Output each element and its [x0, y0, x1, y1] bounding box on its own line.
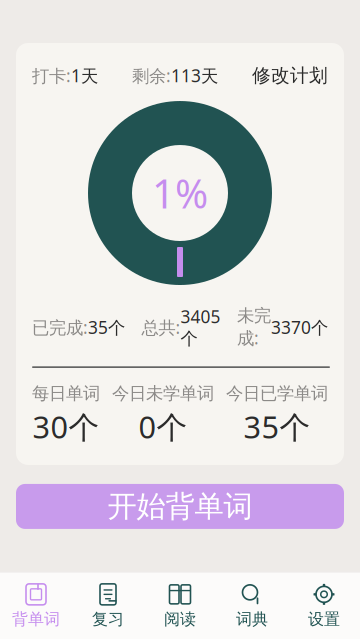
button[interactable]: 设置	[288, 576, 360, 635]
staticText: 背单词	[12, 609, 60, 629]
staticText: 35个	[88, 316, 125, 339]
staticText: 打卡:	[32, 64, 71, 87]
button[interactable]: 修改计划	[252, 64, 328, 87]
staticText: 0个	[138, 406, 187, 447]
staticText: 开始背单词	[107, 488, 252, 524]
staticText: 每日单词	[32, 383, 100, 404]
staticText: 3370个	[271, 316, 328, 339]
staticText: 词典	[236, 609, 268, 629]
button[interactable]: 开始背单词	[16, 484, 344, 529]
staticText: 阅读	[164, 609, 196, 629]
staticText: 113天	[171, 64, 218, 87]
staticText: 设置	[308, 609, 340, 629]
staticText: 已完成:	[32, 316, 88, 339]
staticText: 今日已学单词	[226, 383, 328, 404]
staticText: 1天	[71, 64, 98, 87]
button[interactable]: 复习	[72, 576, 144, 635]
staticText: 总共:	[141, 316, 180, 339]
staticText: 复习	[92, 609, 124, 629]
staticText: 修改计划	[252, 64, 328, 87]
staticText: 未完成:	[237, 305, 271, 349]
staticText: 30个	[32, 406, 99, 447]
staticText: 3405个	[180, 305, 220, 349]
staticText: 剩余:	[132, 64, 171, 87]
button[interactable]: 词典	[216, 576, 288, 635]
staticText: 35个	[243, 406, 310, 447]
staticText: 1%	[152, 166, 208, 220]
staticText: 今日未学单词	[112, 383, 214, 404]
button[interactable]: 背单词	[0, 576, 72, 635]
button[interactable]: 阅读	[144, 576, 216, 635]
